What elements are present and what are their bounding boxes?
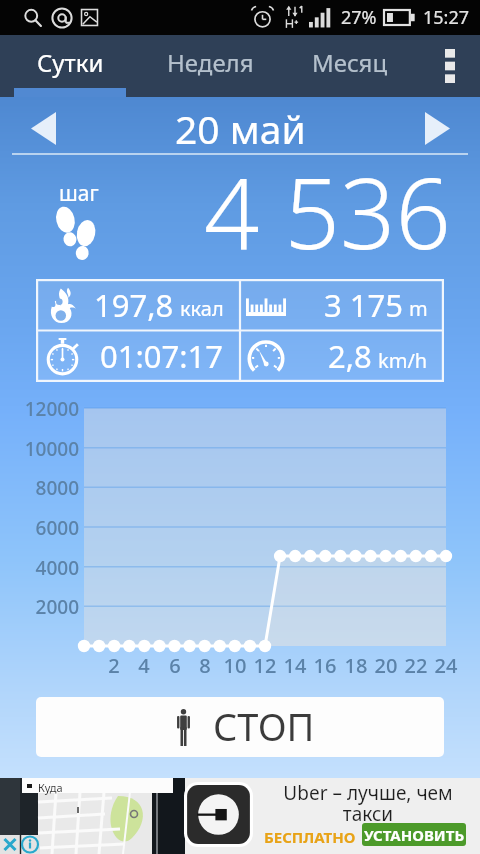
button[interactable]: Next day	[394, 97, 480, 159]
staticText: 27%	[341, 5, 377, 30]
staticText: Куда	[38, 780, 63, 795]
staticText: 197,8	[94, 284, 174, 326]
staticText: 4 536	[204, 145, 451, 262]
button[interactable]: УСТАНОВИТЬ	[362, 823, 466, 846]
staticText: шаг	[59, 179, 99, 208]
staticText: km/h	[378, 347, 428, 374]
staticText: 12	[250, 652, 280, 679]
staticText: 24	[431, 652, 461, 679]
button[interactable]: Неделя	[140, 35, 280, 97]
staticText: 10000	[0, 436, 79, 462]
staticText: 15:27	[423, 5, 470, 30]
staticText: 4000	[0, 555, 79, 581]
staticText: 8000	[0, 475, 79, 501]
staticText: 3 175	[324, 284, 403, 326]
button[interactable]: Previous day	[0, 97, 86, 159]
staticText: ккал	[180, 295, 224, 322]
staticText: 20	[371, 652, 401, 679]
button[interactable]: Куда	[0, 778, 480, 854]
button[interactable]: Сутки	[0, 35, 140, 97]
staticText: БЕСПЛАТНО	[264, 827, 356, 847]
staticText: Сутки	[37, 46, 104, 79]
staticText: 01:07:17	[100, 335, 224, 377]
button[interactable]: Calories	[36, 279, 240, 330]
staticText: Месяц	[312, 46, 388, 79]
staticText: m	[409, 295, 428, 322]
button[interactable]: СТОП	[36, 697, 444, 757]
staticText: 16	[310, 652, 340, 679]
button[interactable]: Time	[36, 330, 240, 382]
staticText: УСТАНОВИТЬ	[364, 825, 465, 845]
staticText: Uber – лучше, чем такси	[256, 780, 480, 827]
staticText: 2,8	[328, 335, 372, 377]
button[interactable]: More options	[420, 35, 480, 97]
staticText: Неделя	[167, 46, 254, 79]
button[interactable]: Speed	[240, 330, 444, 382]
staticText: 4	[129, 652, 159, 679]
staticText: 10	[220, 652, 250, 679]
staticText: 20 май	[175, 102, 306, 155]
staticText: СТОП	[213, 700, 315, 752]
staticText: 22	[401, 652, 431, 679]
staticText: 18	[341, 652, 371, 679]
staticText: 6000	[0, 515, 79, 541]
staticText: 2000	[0, 594, 79, 620]
staticText: 2	[99, 652, 129, 679]
button[interactable]: 20 май	[86, 97, 394, 159]
staticText: 12000	[0, 396, 79, 422]
button[interactable]: Distance	[240, 279, 444, 330]
staticText: 8	[190, 652, 220, 679]
staticText: 14	[280, 652, 310, 679]
button[interactable]: Месяц	[280, 35, 420, 97]
staticText: 6	[160, 652, 190, 679]
